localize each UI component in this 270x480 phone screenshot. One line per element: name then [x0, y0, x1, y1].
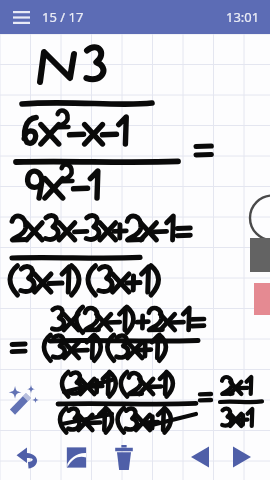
staticText: 13:01 [226, 8, 260, 26]
button[interactable]: Undo [8, 437, 48, 477]
button[interactable]: Eraser [56, 437, 96, 477]
staticText: 15 / 17 [42, 8, 84, 26]
button[interactable]: Previous page [180, 437, 220, 477]
button[interactable]: Delete all [104, 437, 144, 477]
button[interactable]: Magic recognise [4, 380, 44, 420]
button[interactable]: Next page [222, 437, 262, 477]
button[interactable]: Menu [10, 6, 32, 28]
